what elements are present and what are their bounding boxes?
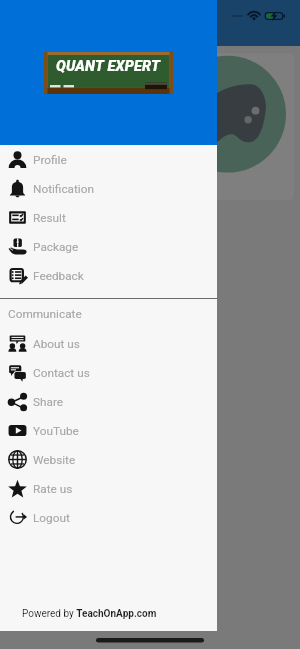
other: Feedback — [8, 266, 27, 285]
staticText: Result — [33, 211, 66, 225]
button[interactable]: Contact us — [0, 358, 217, 387]
staticText: Contact us — [33, 366, 90, 380]
staticText: Share — [33, 395, 64, 409]
staticText: Website — [33, 453, 76, 467]
staticText: Rate us — [33, 482, 73, 496]
staticText: Notification — [33, 182, 94, 196]
button[interactable]: Share — [0, 387, 217, 416]
button[interactable]: Profile — [0, 145, 217, 174]
button[interactable]: Rate us — [0, 474, 217, 503]
button[interactable]: Result — [0, 203, 217, 232]
staticText: Package — [33, 240, 79, 254]
staticText: Profile — [33, 153, 67, 167]
other: Share — [8, 392, 27, 411]
staticText: Feedback — [33, 269, 84, 283]
button[interactable]: Feedback — [0, 261, 217, 290]
other: About us — [8, 334, 27, 353]
button[interactable]: GAMES — [161, 53, 294, 200]
staticText: About us — [33, 337, 80, 351]
other: Logout — [8, 508, 27, 527]
staticText: Communicate — [8, 307, 82, 321]
button[interactable]: Logout — [0, 503, 217, 532]
other: Website — [8, 450, 27, 469]
other: Result — [8, 208, 27, 227]
button[interactable]: Notification — [0, 174, 217, 203]
other: Package — [8, 237, 27, 256]
other: Profile — [8, 150, 27, 169]
staticText: Powered by TeachOnApp.com — [22, 608, 157, 620]
button[interactable]: Website — [0, 445, 217, 474]
button[interactable]: YouTube — [0, 416, 217, 445]
other: Notification — [8, 179, 27, 198]
other: YouTube — [8, 421, 27, 440]
button[interactable]: About us — [0, 329, 217, 358]
staticText: Logout — [33, 511, 70, 525]
staticText: Powered by TeachOnApp.com — [83, 608, 218, 620]
button[interactable]: Package — [0, 232, 217, 261]
other: Rate us — [8, 479, 27, 498]
staticText: YouTube — [33, 424, 79, 438]
other: Contact us — [8, 363, 27, 382]
staticText: QUANT EXPERT — [56, 58, 161, 75]
